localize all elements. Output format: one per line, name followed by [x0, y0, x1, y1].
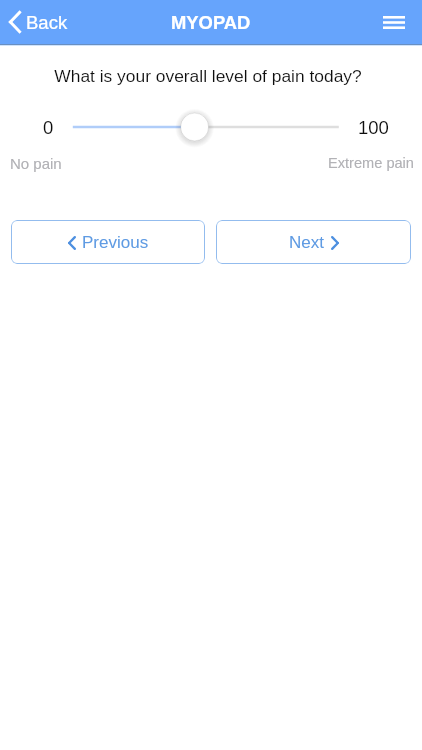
staticText: Previous [82, 233, 149, 252]
staticText: MYOPAD [171, 12, 251, 33]
staticText: 100 [358, 117, 389, 138]
staticText: Back [26, 12, 68, 33]
staticText: Next [289, 233, 324, 252]
button[interactable]: Pain level slider [0, 111, 422, 143]
staticText: No pain [10, 155, 62, 172]
button[interactable]: Back [0, 5, 76, 39]
staticText: 0 [43, 117, 54, 138]
button[interactable]: Next [216, 220, 411, 264]
button[interactable]: Previous [11, 220, 205, 264]
button[interactable]: Menu [377, 5, 411, 39]
staticText: What is your overall level of pain today… [0, 66, 419, 85]
staticText: Extreme pain [328, 155, 414, 171]
